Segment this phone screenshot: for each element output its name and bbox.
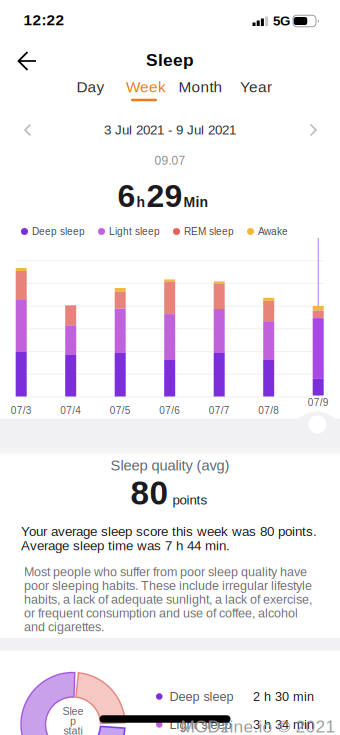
staticText: 3 h 34 min [253,717,314,732]
staticText: 80 [130,474,168,512]
staticText: 07/7 [209,405,230,416]
staticText: 07/9 [308,397,329,408]
staticText: Awake [258,226,288,237]
staticText: Your average sleep score this week was 8… [21,524,317,539]
staticText: 07/5 [110,405,131,416]
staticText: Light sleep [169,717,231,732]
button[interactable]: Week [126,78,166,95]
staticText: points [172,492,207,507]
staticText: Deep sleep [32,226,85,237]
staticText: Slee [62,705,83,717]
staticText: Day [76,78,104,95]
staticText: Sleep [146,50,194,70]
button[interactable]: Day [76,78,104,95]
staticText: or frequent consumption and use of coffe… [24,606,298,620]
staticText: 6 [117,178,135,214]
staticText: REM sleep [184,226,234,237]
staticText: 5G [273,14,290,28]
staticText: Light sleep [109,226,160,237]
staticText: habits, a lack of adequate sunlight, a l… [24,592,312,606]
staticText: Week [126,78,166,95]
staticText: stati [63,725,82,735]
staticText: and cigarettes. [24,620,104,634]
staticText: 3 Jul 2021 - 9 Jul 2021 [104,123,236,137]
button[interactable]: Back [0,0,340,735]
staticText: poor sleeping habits. These include irre… [24,579,312,593]
staticText: Month [178,78,222,95]
staticText: Sleep quality (avg) [110,457,229,474]
staticText: Average sleep time was 7 h 44 min. [21,538,230,553]
staticText: 07/6 [159,405,180,416]
staticText: 09.07 [154,154,185,167]
staticText: 07/3 [11,405,32,416]
staticText: Year [240,78,272,95]
staticText: Deep sleep [169,689,233,704]
staticText: 07/8 [258,405,279,416]
staticText: Min [183,194,208,210]
button[interactable]: Year [240,78,272,95]
staticText: MODzine.io © 2021 [180,717,335,735]
staticText: h [136,194,145,210]
staticText: 12:22 [23,11,64,28]
staticText: 07/4 [60,405,81,416]
staticText: 29 [146,178,182,214]
staticText: 2 h 30 min [253,689,314,704]
button[interactable]: Previous week [0,0,340,735]
button[interactable]: Next week [0,0,340,735]
staticText: Most people who suffer from poor sleep q… [24,565,307,579]
staticText: p [70,715,76,727]
button[interactable]: Month [178,78,222,95]
